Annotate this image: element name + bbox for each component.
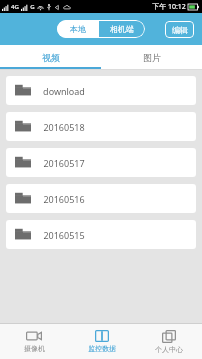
staticText: 下午 10:12 (152, 2, 186, 12)
staticText: 20160516 (43, 193, 85, 205)
staticText: 摄像机 (24, 344, 45, 353)
button[interactable]: 编辑 (165, 21, 194, 38)
staticText: 个人中心 (155, 345, 183, 354)
staticText: 20160515 (43, 229, 85, 241)
button[interactable]: 图片 (101, 45, 202, 69)
staticText: 20160517 (43, 157, 85, 169)
button[interactable]: 20160516 (6, 184, 196, 213)
button[interactable]: 20160517 (6, 148, 196, 177)
button[interactable]: download (6, 76, 196, 105)
button[interactable]: 个人中心 (135, 324, 202, 359)
staticText: 编辑 (172, 25, 188, 35)
button[interactable]: 本地 (57, 20, 99, 38)
button[interactable]: 20160515 (6, 220, 196, 249)
button[interactable]: 20160518 (6, 112, 196, 141)
staticText: G (30, 3, 35, 11)
button[interactable]: 视频 (0, 45, 101, 69)
button[interactable]: 摄像机 (0, 324, 68, 359)
staticText: 监控数据 (88, 344, 116, 353)
button[interactable]: 监控数据 (68, 324, 135, 359)
staticText: 视频 (42, 52, 60, 63)
staticText: 相机端 (110, 24, 134, 34)
staticText: 图片 (143, 52, 161, 63)
staticText: 本地 (70, 24, 86, 34)
staticText: download (43, 85, 85, 97)
staticText: 20160518 (43, 121, 85, 133)
button[interactable]: 相机端 (99, 20, 145, 38)
staticText: 4G (11, 3, 19, 11)
